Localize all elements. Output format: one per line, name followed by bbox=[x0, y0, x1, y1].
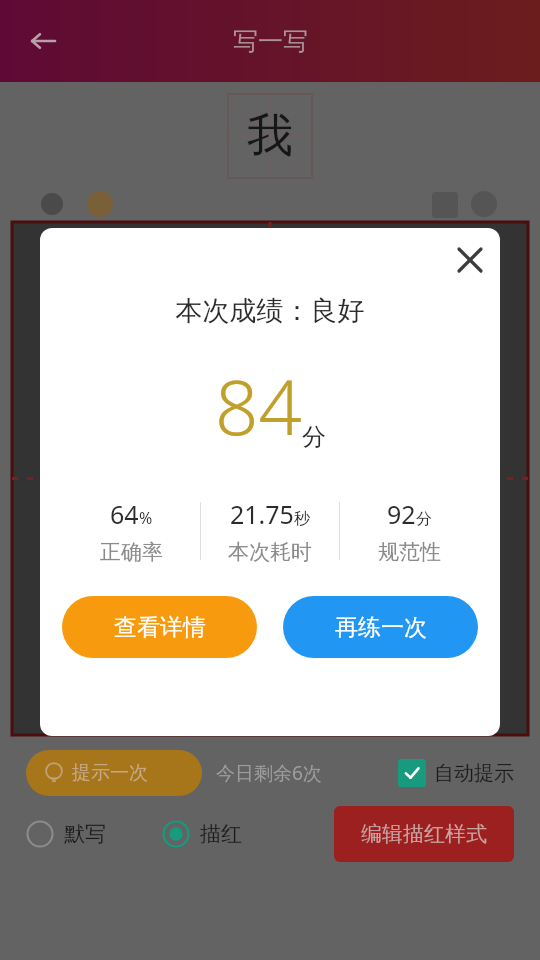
staticText: 21.75 bbox=[230, 497, 294, 531]
staticText: 本次耗时 bbox=[228, 539, 312, 565]
staticText: 92 bbox=[387, 497, 416, 531]
button[interactable]: 自动提示 bbox=[398, 759, 514, 787]
staticText: 分 bbox=[302, 422, 326, 452]
button[interactable]: 查看详情 bbox=[62, 596, 257, 658]
staticText: 秒 bbox=[294, 509, 310, 529]
staticText: 分 bbox=[416, 509, 432, 529]
button[interactable]: 再练一次 bbox=[283, 596, 478, 658]
button[interactable]: Close bbox=[446, 236, 494, 284]
staticText: 84 bbox=[215, 354, 302, 458]
button[interactable]: 描红 bbox=[162, 820, 242, 848]
staticText: 今日剩余6次 bbox=[216, 760, 322, 786]
staticText: 自动提示 bbox=[434, 761, 514, 786]
staticText: 再练一次 bbox=[335, 613, 427, 642]
button[interactable]: 默写 bbox=[26, 820, 106, 848]
button[interactable]: 编辑描红样式 bbox=[334, 806, 514, 862]
staticText: 本次成绩：良好 bbox=[40, 294, 500, 328]
staticText: 查看详情 bbox=[114, 613, 206, 642]
staticText: 提示一次 bbox=[72, 761, 148, 785]
staticText: 写一写 bbox=[233, 26, 308, 57]
staticText: 描红 bbox=[200, 821, 242, 847]
staticText: 我 bbox=[247, 107, 293, 165]
staticText: 编辑描红样式 bbox=[361, 821, 487, 847]
staticText: 规范性 bbox=[378, 539, 441, 565]
staticText: 默写 bbox=[64, 821, 106, 847]
staticText: 64 bbox=[110, 497, 139, 531]
staticText: 正确率 bbox=[100, 539, 163, 565]
staticText: % bbox=[139, 507, 153, 529]
button[interactable]: 提示一次 bbox=[26, 750, 202, 796]
button[interactable]: Back bbox=[18, 17, 66, 65]
